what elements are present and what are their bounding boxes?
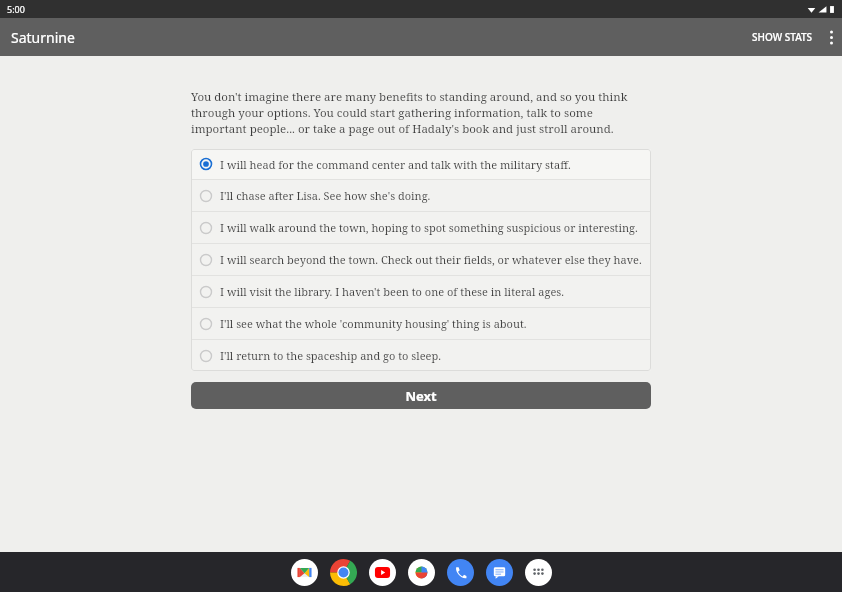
button[interactable]: I'll chase after Lisa. See how she's doi… [191,180,651,211]
button[interactable]: SHOW STATS [744,20,821,54]
staticText: I'll see what the whole 'community housi… [220,316,527,331]
button[interactable]: Messages [486,559,513,586]
button[interactable]: YouTube [369,559,396,586]
button[interactable]: I'll return to the spaceship and go to s… [191,340,651,371]
button[interactable]: Next [191,382,651,409]
button[interactable]: All apps [525,559,552,586]
staticText: I will search beyond the town. Check out… [220,252,642,267]
button[interactable]: I will head for the command center and t… [191,149,651,179]
button[interactable]: Phone [447,559,474,586]
button[interactable]: I will search beyond the town. Check out… [191,244,651,275]
button[interactable]: Chrome [330,559,357,586]
staticText: I will walk around the town, hoping to s… [220,220,638,235]
staticText: Next [405,387,437,405]
staticText: You don't imagine there are many benefit… [191,89,651,137]
staticText: I will head for the command center and t… [220,157,571,172]
button[interactable]: I will walk around the town, hoping to s… [191,212,651,243]
staticText: I'll return to the spaceship and go to s… [220,348,441,363]
button[interactable]: I'll see what the whole 'community housi… [191,308,651,339]
staticText: SHOW STATS [752,30,813,44]
button[interactable]: Photos [408,559,435,586]
button[interactable]: More options [821,21,842,54]
staticText: 5:00 [7,3,25,15]
button[interactable]: Gmail [291,559,318,586]
staticText: Saturnine [11,28,75,47]
staticText: I'll chase after Lisa. See how she's doi… [220,188,431,203]
staticText: I will visit the library. I haven't been… [220,284,565,299]
button[interactable]: I will visit the library. I haven't been… [191,276,651,307]
